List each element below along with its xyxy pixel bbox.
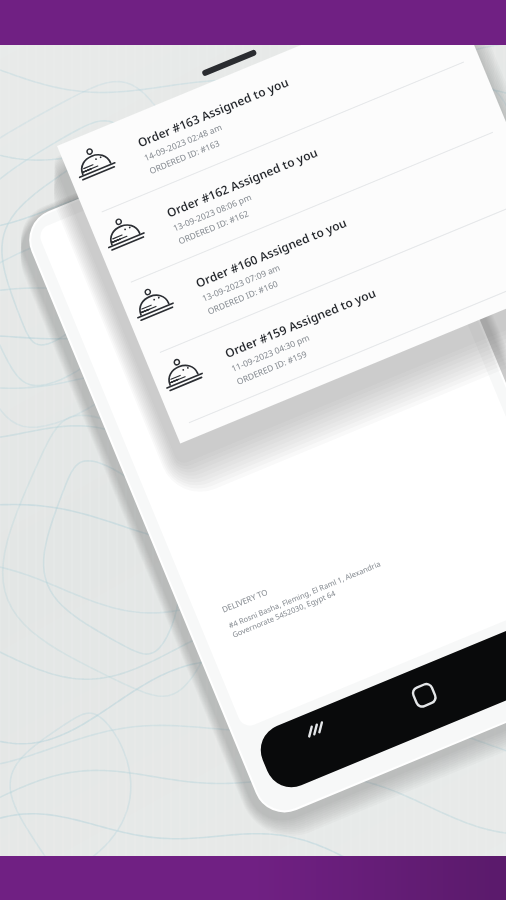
button[interactable]: Order list app preview [0, 0, 506, 900]
